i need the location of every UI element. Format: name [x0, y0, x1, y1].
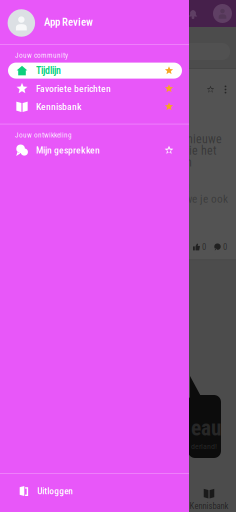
staticText: collega's voor te stellen die het — [65, 144, 217, 158]
button[interactable]: 0 — [214, 242, 227, 252]
staticText: Jouw ontwikkeling — [15, 131, 72, 139]
button[interactable]: Favourite — [205, 84, 216, 95]
button[interactable]: 0 — [193, 242, 206, 252]
button[interactable]: More options — [220, 84, 231, 95]
staticText: Uitloggen — [37, 485, 73, 496]
button[interactable]: Search — [22, 43, 230, 60]
button[interactable]: App Review — [0, 0, 189, 44]
staticText: team komen versterken — [78, 155, 192, 169]
staticText: 0 — [202, 242, 206, 252]
staticText: 0 — [223, 242, 227, 252]
button[interactable]: Favoriete berichten — [8, 81, 182, 97]
staticText: App Review — [44, 16, 93, 28]
staticText: Jouw community — [15, 51, 68, 60]
staticText: Vanaf volgende week stellen we je ook — [56, 192, 228, 206]
staticText: Tijdlijn — [36, 65, 61, 76]
staticText: Kennisbank — [189, 501, 228, 511]
button[interactable]: Notifications — [184, 4, 202, 22]
button[interactable]: Mijn gesprekken — [8, 142, 182, 158]
button[interactable]: Profile — [213, 4, 232, 23]
staticText: derland! — [191, 442, 217, 451]
button[interactable]: Kennisbank — [8, 99, 182, 115]
button[interactable]: Uitloggen — [0, 474, 189, 512]
staticText: Favoriete berichten — [36, 83, 111, 94]
button[interactable]: Tijdlijn — [8, 63, 182, 79]
staticText: eau — [191, 416, 221, 441]
button[interactable]: Kennisbank — [187, 489, 231, 511]
staticText: Welkom allemaal! — [110, 181, 190, 195]
staticText: Mijn gesprekken — [36, 144, 100, 156]
staticText: Wij zijn trots om jullie de nieuwe — [63, 132, 222, 146]
staticText: Kennisbank — [36, 101, 82, 112]
